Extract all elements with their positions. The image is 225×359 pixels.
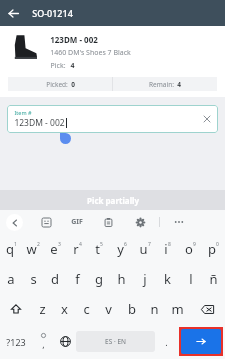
staticText: y (117, 240, 124, 258)
staticText: h (117, 270, 126, 288)
staticText: v (105, 300, 112, 318)
button[interactable]: i (156, 234, 179, 264)
button[interactable]: z (31, 294, 53, 324)
staticText: o (185, 240, 193, 258)
button[interactable]: j (133, 264, 156, 294)
staticText: p (208, 240, 216, 258)
staticText: b (128, 300, 136, 318)
staticText: m (171, 300, 184, 318)
button[interactable]: x (53, 294, 75, 324)
button[interactable]: n (143, 294, 166, 324)
button[interactable]: e (44, 234, 66, 264)
button[interactable]: p (202, 234, 225, 264)
button[interactable]: b (120, 294, 143, 324)
staticText: c (83, 300, 90, 318)
button[interactable]: ?123 (0, 324, 32, 359)
button[interactable]: h (110, 264, 133, 294)
staticText: n (150, 300, 159, 318)
staticText: 4 (70, 61, 75, 71)
button[interactable]: Backspace (189, 294, 225, 324)
staticText: 9 (193, 241, 196, 248)
staticText: ES · EN (105, 337, 126, 346)
staticText: z (39, 300, 46, 318)
button[interactable]: m (166, 294, 189, 324)
button[interactable]: t (88, 234, 110, 264)
staticText: ñ (209, 270, 218, 288)
button[interactable]: ES · EN (76, 331, 155, 352)
button[interactable]: . (155, 324, 177, 359)
staticText: 0 (216, 241, 219, 248)
staticText: 1 (14, 241, 17, 248)
button[interactable]: Back (0, 0, 26, 26)
button[interactable]: d (44, 264, 66, 294)
button[interactable]: s (22, 264, 44, 294)
staticText: Picked: (46, 80, 68, 89)
staticText: e (50, 240, 58, 258)
button[interactable]: Item # (7, 105, 218, 133)
staticText: t (95, 240, 100, 258)
button[interactable]: ñ (202, 264, 225, 294)
staticText: g (95, 270, 103, 288)
button[interactable]: Stickers (37, 213, 55, 231)
button[interactable]: c (75, 294, 97, 324)
staticText: 123DM - 002 (14, 117, 65, 129)
button[interactable]: k (156, 264, 179, 294)
button[interactable]: u (133, 234, 156, 264)
button[interactable]: g (88, 264, 110, 294)
staticText: SO-01214 (32, 7, 73, 19)
staticText: Pick partially (87, 195, 139, 206)
staticText: u (139, 240, 148, 258)
staticText: l (189, 270, 193, 288)
staticText: Item # (14, 109, 32, 116)
staticText: ?123 (6, 336, 26, 348)
staticText: , (42, 338, 45, 350)
button[interactable]: Enter (181, 329, 221, 354)
staticText: w (26, 240, 37, 258)
button[interactable]: GIF (69, 217, 85, 227)
staticText: s (30, 270, 37, 288)
staticText: . (165, 336, 168, 348)
staticText: i (164, 240, 168, 258)
staticText: 1460 DM's Shoes 7 Black (50, 48, 131, 58)
staticText: a (7, 270, 15, 288)
staticText: 6 (124, 241, 127, 248)
button[interactable]: a (0, 264, 22, 294)
button[interactable]: Emoji comma (32, 324, 54, 359)
button[interactable]: Clipboard (99, 213, 117, 231)
staticText: q (6, 240, 14, 258)
button[interactable]: Settings (131, 213, 149, 231)
staticText: GIF (71, 217, 83, 227)
button[interactable]: Shift (0, 294, 31, 324)
staticText: 8 (168, 241, 171, 248)
staticText: d (51, 270, 59, 288)
button[interactable]: f (66, 264, 88, 294)
button[interactable]: q (0, 234, 22, 264)
button[interactable]: r (66, 234, 88, 264)
staticText: Pick: (50, 61, 66, 71)
staticText: j (143, 270, 147, 288)
button[interactable]: l (179, 264, 202, 294)
staticText: 7 (148, 241, 151, 248)
staticText: r (73, 240, 79, 258)
staticText: f (75, 270, 80, 288)
staticText: 5 (100, 241, 103, 248)
button[interactable]: Change language (54, 324, 76, 359)
button[interactable]: v (97, 294, 120, 324)
staticText: k (164, 270, 171, 288)
staticText: 4 (79, 241, 82, 248)
staticText: 3 (58, 241, 61, 248)
staticText: 4 (177, 80, 181, 89)
button[interactable]: Pick partially (0, 190, 225, 210)
staticText: x (61, 300, 68, 318)
staticText: 2 (37, 241, 40, 248)
button[interactable]: Collapse toolbar (6, 214, 23, 231)
button[interactable]: Clear (201, 113, 213, 125)
staticText: Remain: (149, 80, 174, 89)
button[interactable]: o (179, 234, 202, 264)
staticText: 123DM - 002 (50, 34, 98, 45)
button[interactable]: More options (170, 213, 188, 231)
button[interactable]: y (110, 234, 133, 264)
staticText: 0 (71, 80, 75, 89)
button[interactable]: w (22, 234, 44, 264)
